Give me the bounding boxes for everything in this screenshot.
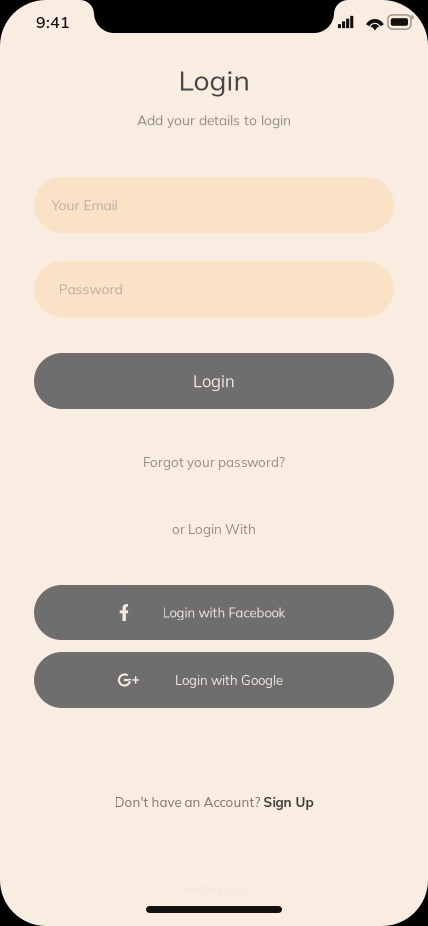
staticText: Login [178,62,249,97]
staticText: Login with Facebook [162,604,285,621]
staticText: Sign Up [263,794,313,810]
staticText: Don't have an Account? [114,794,263,810]
staticText: Login with Google [175,672,283,688]
staticText: or Login With [172,521,256,537]
staticText: 9:41 [36,12,70,32]
button[interactable]: Password [34,261,394,317]
staticText: Login [193,371,235,391]
button[interactable]: Login with Facebook [34,585,394,640]
staticText: Forgot your password? [143,454,285,470]
staticText: Password [58,280,122,298]
button[interactable]: Don't have an Account? [94,793,333,811]
button[interactable]: Login with Google [34,652,394,708]
staticText: Add your details to login [137,111,291,129]
staticText: Your Email [51,196,117,214]
button[interactable]: Your Email [34,177,394,233]
button[interactable]: Forgot your password? [119,409,309,470]
staticText: mostaql.com [183,883,244,896]
button[interactable]: Login [34,353,394,409]
